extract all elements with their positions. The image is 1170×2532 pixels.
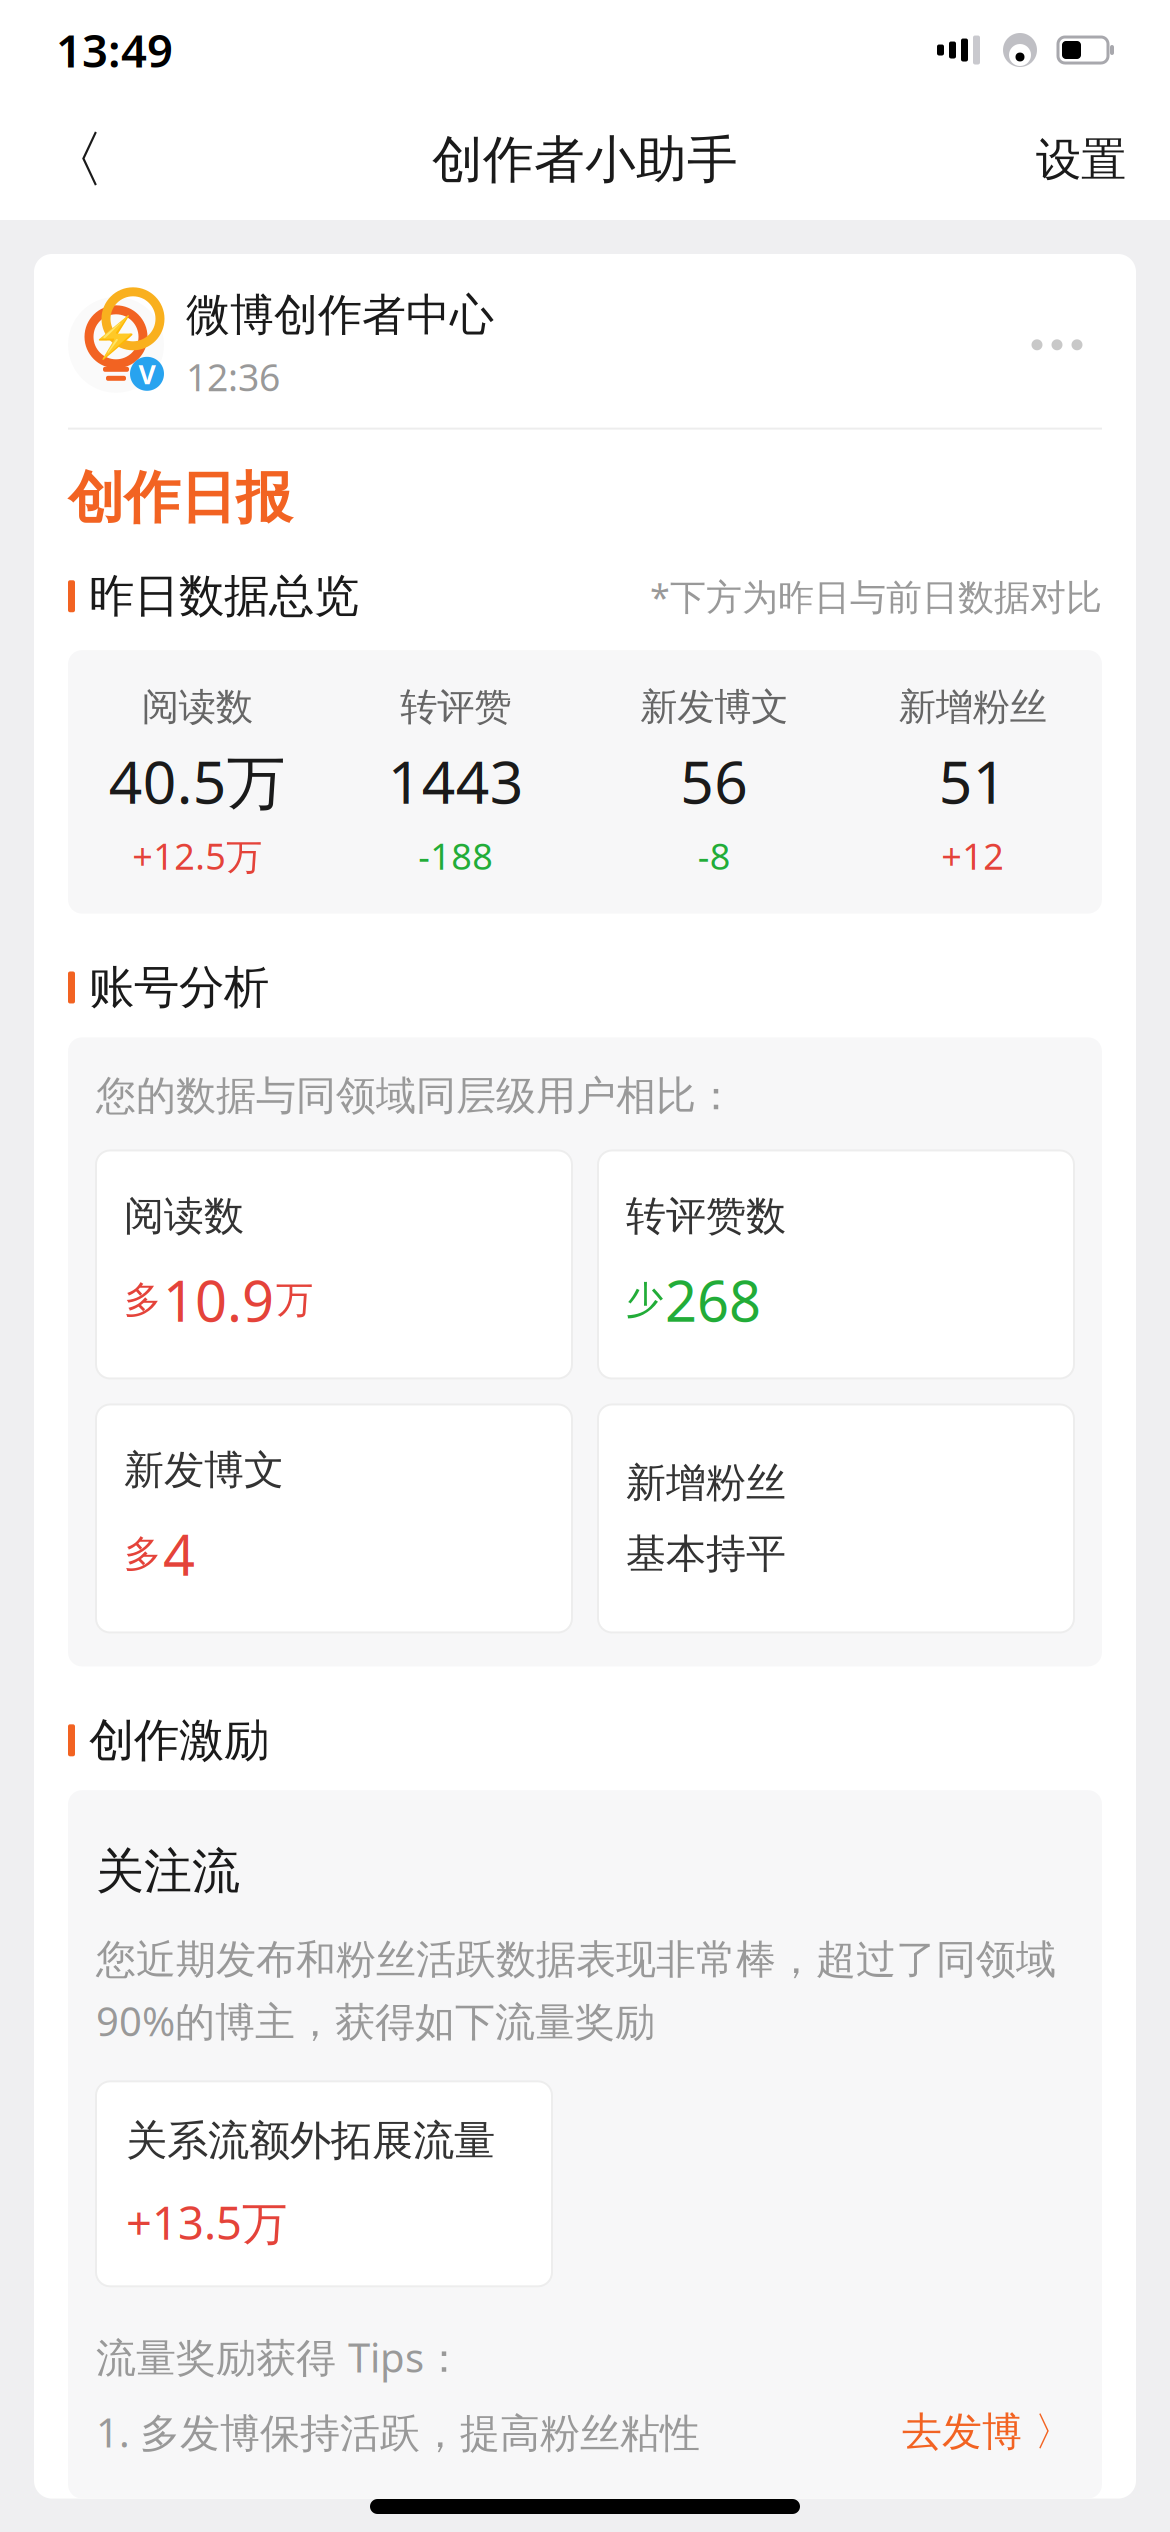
staticText: 4 xyxy=(163,1517,195,1591)
staticText: 56 xyxy=(680,742,748,820)
staticText: 您近期发布和粉丝活跃数据表现非常棒，超过了同领域 xyxy=(96,1935,1056,1984)
staticText: 创作激励 xyxy=(89,1712,269,1768)
staticText: 51 xyxy=(939,742,1007,820)
button[interactable]: 新增粉丝 xyxy=(598,1404,1074,1632)
staticText: -8 xyxy=(698,832,731,880)
staticText: *下方为昨日与前日数据对比 xyxy=(650,572,1102,620)
staticText: 账号分析 xyxy=(89,960,269,1015)
button[interactable]: 设置 xyxy=(1026,120,1136,200)
button[interactable]: Back xyxy=(34,120,114,200)
staticText: 新发博文 xyxy=(124,1446,284,1495)
staticText: V xyxy=(138,356,155,391)
staticText: 创作者小助手 xyxy=(432,129,738,191)
staticText: 您的数据与同领域同层级用户相比： xyxy=(96,1071,736,1120)
button[interactable]: More options xyxy=(1012,315,1102,375)
staticText: 〈 xyxy=(43,122,104,198)
staticText: 关注流 xyxy=(96,1842,240,1901)
staticText: 1. 多发博保持活跃，提高粉丝粘性 xyxy=(96,2405,700,2458)
staticText: 微博创作者中心 xyxy=(186,288,494,342)
staticText: 40.5万 xyxy=(109,742,286,820)
staticText: 多 xyxy=(124,1277,161,1323)
staticText: 268 xyxy=(665,1263,761,1337)
staticText: 转评赞数 xyxy=(626,1192,786,1241)
staticText: 90%的博主，获得如下流量奖励 xyxy=(96,1994,655,2047)
staticText: 设置 xyxy=(1036,132,1126,188)
staticText: 新发博文 xyxy=(640,684,788,730)
staticText: 多 xyxy=(124,1531,161,1577)
staticText: 少 xyxy=(626,1277,663,1323)
staticText: -188 xyxy=(418,832,493,880)
staticText: 12:36 xyxy=(186,352,280,402)
button[interactable]: 去发博 〉 xyxy=(902,2407,1074,2456)
button[interactable]: 阅读数 xyxy=(96,1150,572,1378)
staticText: 转评赞 xyxy=(400,684,511,730)
staticText: +13.5万 xyxy=(126,2192,287,2252)
staticText: 新增粉丝 xyxy=(626,1458,786,1507)
staticText: 去发博 〉 xyxy=(902,2407,1074,2456)
button[interactable]: 关系流额外拓展流量 xyxy=(96,2081,552,2286)
staticText: 昨日数据总览 xyxy=(89,568,359,624)
staticText: +12.5万 xyxy=(132,832,262,880)
staticText: 流量奖励获得 Tips： xyxy=(96,2330,464,2383)
staticText: 阅读数 xyxy=(142,684,253,730)
staticText: 万 xyxy=(276,1277,313,1323)
button[interactable]: 转评赞数 xyxy=(598,1150,1074,1378)
staticText: 阅读数 xyxy=(124,1192,244,1241)
staticText: 创作日报 xyxy=(68,464,292,532)
staticText: 10.9 xyxy=(163,1263,274,1337)
staticText: 新增粉丝 xyxy=(899,684,1047,730)
staticText: 基本持平 xyxy=(626,1529,786,1579)
button[interactable]: 新发博文 xyxy=(96,1404,572,1632)
staticText: ⚡ xyxy=(91,315,141,361)
staticText: +12 xyxy=(941,832,1004,880)
staticText: 1443 xyxy=(388,742,524,820)
staticText: 13:49 xyxy=(56,20,173,80)
staticText: 关系流额外拓展流量 xyxy=(126,2115,495,2166)
